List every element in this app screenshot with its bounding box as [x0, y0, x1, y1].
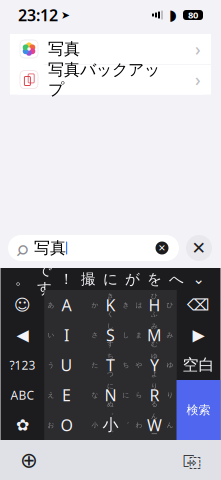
staticText: え: [47, 391, 54, 399]
staticText: 。: [15, 270, 30, 288]
button[interactable]: Emoji: [0, 290, 44, 320]
button[interactable]: [44, 350, 88, 380]
button[interactable]: Dictation: [177, 445, 207, 475]
staticText: き: [107, 292, 114, 300]
staticText: ➤: [61, 9, 70, 21]
staticText: ん: [166, 421, 173, 429]
button[interactable]: Latin letters: [0, 380, 44, 410]
button[interactable]: [44, 320, 88, 350]
button[interactable]: Close search: [185, 234, 213, 262]
staticText: に: [103, 270, 118, 288]
staticText: ◀: [16, 326, 28, 344]
staticText: W: [147, 414, 162, 436]
staticText: に: [122, 391, 129, 399]
staticText: ✿: [16, 416, 29, 434]
staticText: ✕: [191, 238, 206, 258]
staticText: ゜: [107, 430, 114, 438]
staticText: い: [47, 331, 54, 339]
staticText: お: [47, 421, 54, 429]
button[interactable]: Next keyboard: [14, 445, 44, 475]
staticText: ?123: [9, 357, 35, 373]
staticText: R: [149, 384, 159, 406]
staticText: Y: [150, 354, 159, 376]
button[interactable]: Clear text: [153, 239, 171, 257]
staticText: 写真: [48, 39, 80, 59]
staticText: ABC: [10, 387, 34, 403]
staticText: か: [91, 301, 98, 309]
button[interactable]: Move cursor left: [0, 320, 44, 350]
staticText: A: [61, 294, 71, 316]
staticText: わ: [135, 421, 142, 429]
button[interactable]: ゛: [88, 410, 132, 440]
button[interactable]: ひ: [132, 290, 176, 320]
staticText: E: [62, 384, 71, 406]
button[interactable]: Move cursor right: [176, 320, 220, 350]
button[interactable]: に: [88, 380, 132, 410]
staticText: H: [148, 294, 160, 316]
staticText: ⌕: [16, 228, 29, 268]
staticText: ›: [195, 37, 201, 60]
button[interactable]: ！: [55, 268, 77, 290]
staticText: ゛: [107, 412, 114, 420]
staticText: ›: [195, 68, 201, 91]
button[interactable]: 写真: [10, 34, 211, 64]
staticText: つ: [107, 370, 114, 378]
staticText: に: [107, 382, 114, 390]
staticText: む: [151, 340, 158, 348]
button[interactable]: り: [132, 380, 176, 410]
staticText: る: [151, 400, 158, 408]
button[interactable]: Expand candidates: [187, 268, 209, 290]
staticText: へ: [169, 270, 184, 288]
staticText: ⌄: [192, 271, 204, 287]
staticText: ✕: [158, 243, 166, 253]
button[interactable]: ゆ: [132, 350, 176, 380]
button[interactable]: み: [132, 320, 176, 350]
staticText: T: [106, 354, 115, 376]
staticText: 検索: [186, 403, 210, 417]
staticText: ち: [107, 352, 114, 360]
staticText: 80: [188, 9, 198, 21]
button[interactable]: き: [88, 290, 132, 320]
button[interactable]: Numbers and symbols: [0, 350, 44, 380]
button[interactable]: 写真バックアップ: [10, 65, 211, 95]
staticText: 写真バックアップ: [48, 60, 160, 99]
staticText: ひ: [151, 292, 158, 300]
staticText: ふ: [151, 310, 158, 318]
staticText: ⊕: [20, 448, 38, 472]
button[interactable]: ち: [88, 350, 132, 380]
staticText: た: [91, 361, 98, 369]
button[interactable]: [44, 290, 88, 320]
button[interactable]: 撮: [77, 268, 99, 290]
staticText: あ: [47, 301, 54, 309]
staticText: M: [147, 324, 162, 346]
button[interactable]: [44, 410, 88, 440]
staticText: み: [166, 331, 173, 339]
button[interactable]: 検索: [176, 380, 220, 440]
button[interactable]: が: [121, 268, 143, 290]
button[interactable]: Delete: [176, 290, 220, 320]
staticText: を: [147, 270, 162, 288]
staticText: し: [122, 331, 129, 339]
staticText: ゛: [122, 421, 129, 429]
button[interactable]: [44, 380, 88, 410]
staticText: り: [151, 382, 158, 390]
button[interactable]: Space: [176, 350, 220, 380]
staticText: U: [60, 354, 72, 376]
button[interactable]: ん: [132, 410, 176, 440]
staticText: ⌫: [187, 296, 210, 314]
button[interactable]: Keyboard settings: [0, 410, 44, 440]
button[interactable]: し: [88, 320, 132, 350]
button[interactable]: 。: [11, 268, 33, 290]
button[interactable]: を: [143, 268, 165, 290]
staticText: ひ: [166, 301, 173, 309]
button[interactable]: へ: [165, 268, 187, 290]
staticText: ◗: [169, 7, 177, 23]
staticText: K: [105, 294, 115, 316]
staticText: 写真: [34, 238, 66, 258]
staticText: は: [135, 301, 142, 309]
staticText: ▶: [192, 326, 204, 344]
staticText: り: [166, 391, 173, 399]
button[interactable]: です: [33, 268, 55, 290]
staticText: ら: [135, 391, 142, 399]
button[interactable]: に: [99, 268, 121, 290]
